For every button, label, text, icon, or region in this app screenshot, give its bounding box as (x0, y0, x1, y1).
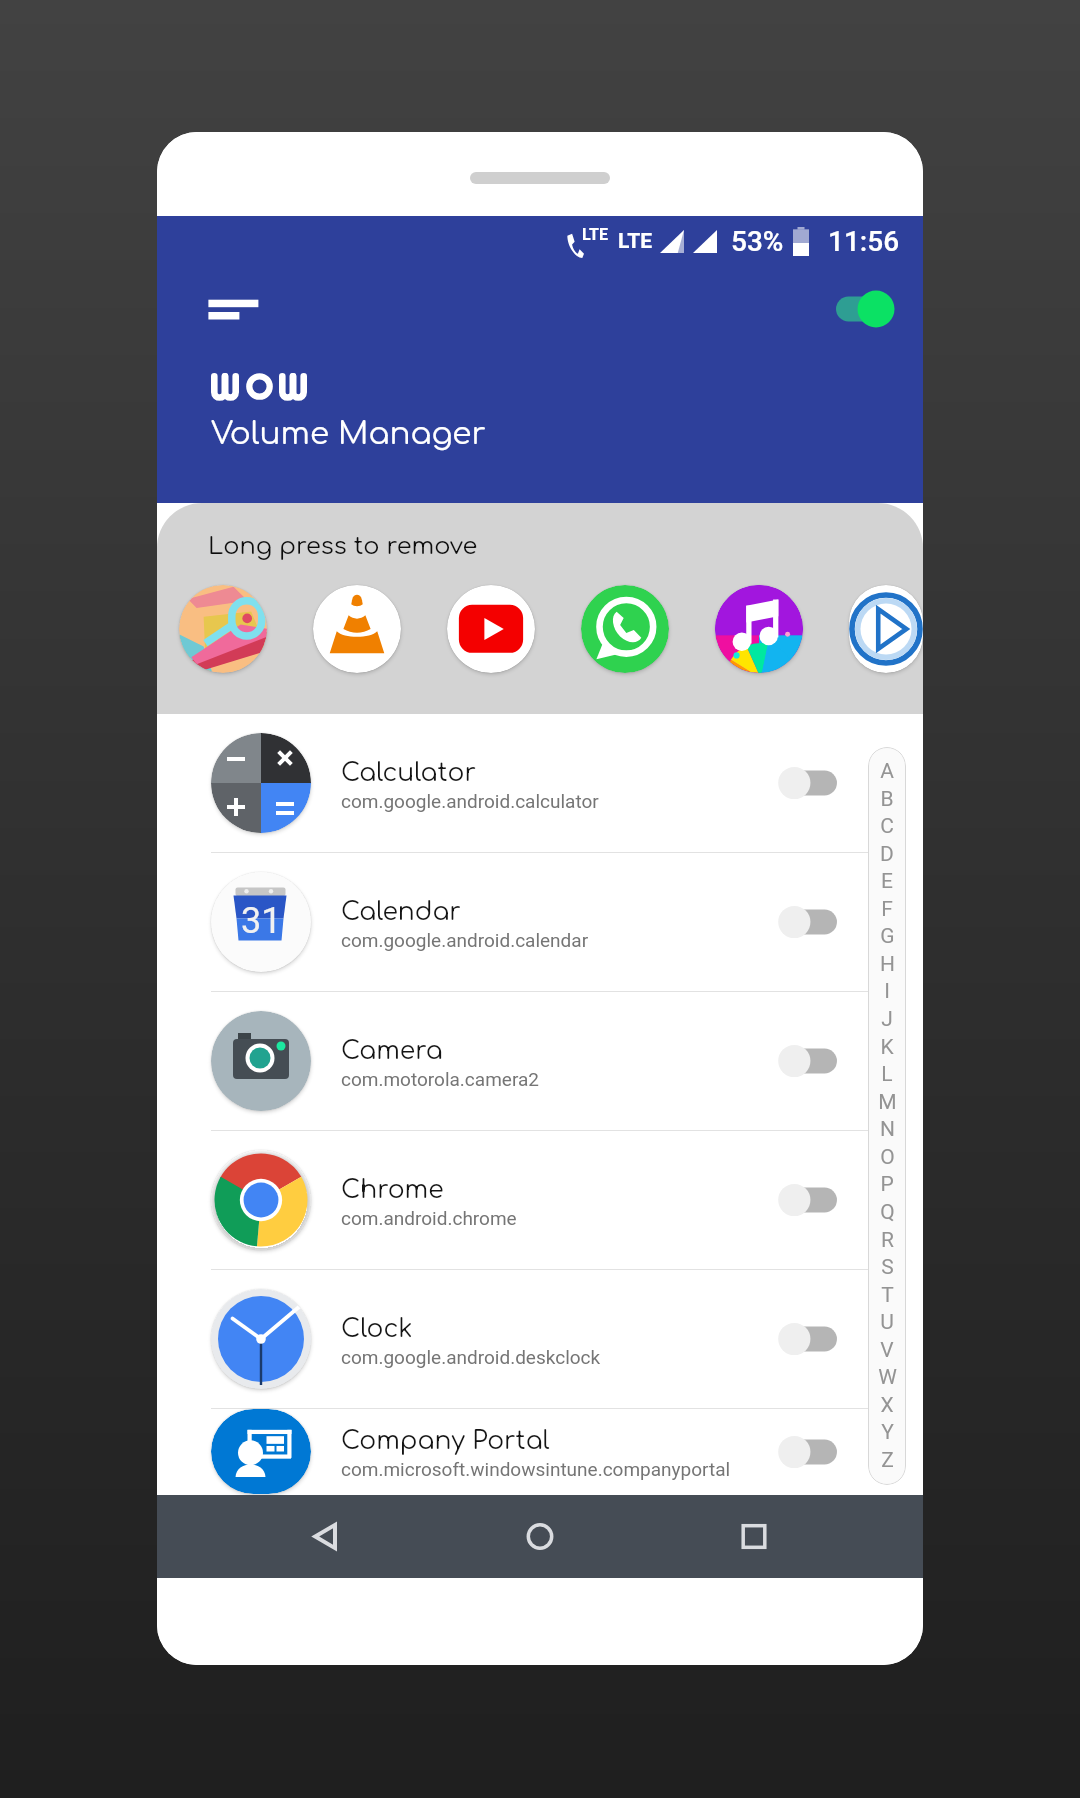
staticText: M (878, 1090, 897, 1115)
staticText: N (880, 1117, 895, 1142)
staticText: E (881, 869, 893, 894)
staticText: Camera (341, 1037, 443, 1065)
staticText: com.motorola.camera2 (341, 1068, 539, 1090)
staticText: I (884, 979, 890, 1004)
staticText: A (880, 759, 894, 784)
staticText: Z (881, 1448, 894, 1473)
button[interactable]: Toggle (773, 1429, 855, 1475)
button[interactable]: App shortcut (581, 585, 669, 673)
button[interactable]: Toggle (773, 1177, 855, 1223)
staticText: Volume Manager (211, 417, 486, 452)
staticText: X (880, 1393, 894, 1418)
button[interactable]: App shortcut (447, 585, 535, 673)
staticText: R (881, 1228, 894, 1253)
button[interactable]: App shortcut (715, 585, 803, 673)
button[interactable]: Toggle (773, 899, 855, 945)
button[interactable]: Calculator (157, 714, 923, 853)
button[interactable]: Toggle (773, 1316, 855, 1362)
staticText: Chrome (341, 1176, 444, 1204)
button[interactable]: Back (281, 1495, 371, 1578)
staticText: T (881, 1283, 894, 1308)
button[interactable]: Toggle (773, 760, 855, 806)
staticText: 53% (731, 225, 784, 258)
staticText: U (880, 1310, 894, 1335)
staticText: J (881, 1007, 893, 1032)
staticText: C (880, 814, 894, 839)
button[interactable]: Menu (193, 278, 259, 324)
staticText: Company Portal (341, 1427, 550, 1455)
staticText: Long press to remove (208, 533, 478, 560)
staticText: com.google.android.calculator (341, 790, 599, 812)
staticText: Calendar (341, 898, 461, 926)
button[interactable]: Camera (157, 992, 923, 1131)
button[interactable]: App shortcut (179, 585, 267, 673)
staticText: B (880, 787, 894, 812)
staticText: P (880, 1172, 894, 1197)
staticText: Calculator (341, 759, 477, 787)
staticText: S (881, 1255, 894, 1280)
staticText: K (880, 1035, 894, 1060)
staticText: G (880, 924, 895, 949)
staticText: F (881, 897, 893, 922)
staticText: com.android.chrome (341, 1207, 517, 1229)
staticText: LTE (618, 229, 653, 254)
staticText: W (878, 1365, 897, 1390)
staticText: V (880, 1338, 894, 1363)
staticText: L (881, 1062, 893, 1087)
staticText: 11:56 (828, 225, 900, 258)
staticText: LTE (582, 225, 608, 244)
button[interactable]: App shortcut (313, 585, 401, 673)
staticText: D (880, 842, 894, 867)
other: wow (211, 373, 311, 401)
button[interactable]: Alphabet index (868, 747, 906, 1485)
button[interactable]: Clock (157, 1270, 923, 1409)
button[interactable]: App shortcut (849, 585, 923, 673)
staticText: 31 (241, 900, 282, 942)
button[interactable]: Chrome (157, 1131, 923, 1270)
staticText: O (880, 1145, 895, 1170)
staticText: com.google.android.calendar (341, 929, 589, 951)
staticText: com.google.android.deskclock (341, 1346, 601, 1368)
button[interactable]: Home (495, 1495, 585, 1578)
button[interactable]: Recents (709, 1495, 799, 1578)
staticText: Clock (341, 1315, 413, 1343)
staticText: Y (881, 1420, 894, 1445)
button[interactable]: 31 (157, 853, 923, 992)
staticText: Q (880, 1200, 895, 1225)
staticText: H (880, 952, 895, 977)
button[interactable]: Toggle (773, 1038, 855, 1084)
staticText: com.microsoft.windowsintune.companyporta… (341, 1458, 731, 1480)
button[interactable]: Enable service (820, 268, 910, 328)
button[interactable]: Company Portal (157, 1409, 923, 1495)
